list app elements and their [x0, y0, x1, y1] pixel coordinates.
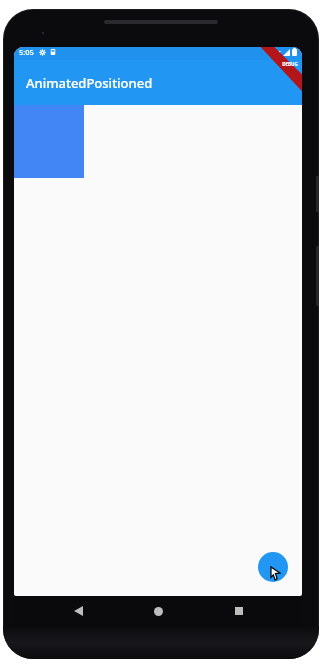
button[interactable]: Home: [141, 596, 175, 626]
staticText: AnimatedPositioned: [26, 74, 153, 92]
button[interactable]: Recent apps: [222, 596, 256, 626]
staticText: DEBUG: [282, 61, 298, 67]
button[interactable]: Animate: [258, 552, 288, 582]
button[interactable]: Back: [61, 596, 95, 626]
staticText: 5:05: [19, 47, 34, 57]
